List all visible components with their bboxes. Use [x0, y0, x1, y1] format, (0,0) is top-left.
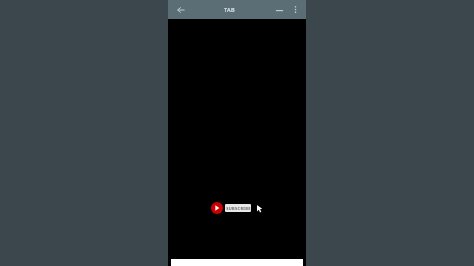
button[interactable]: Navigate up	[173, 2, 188, 17]
button[interactable]: More options	[288, 2, 303, 17]
staticText: TAB	[224, 6, 235, 13]
button[interactable]: YouTube channel	[211, 202, 223, 214]
button[interactable]: SUBSCRIBE	[225, 204, 251, 212]
staticText: SUBSCRIBE	[226, 206, 251, 211]
button[interactable]: Collapse	[272, 2, 287, 17]
